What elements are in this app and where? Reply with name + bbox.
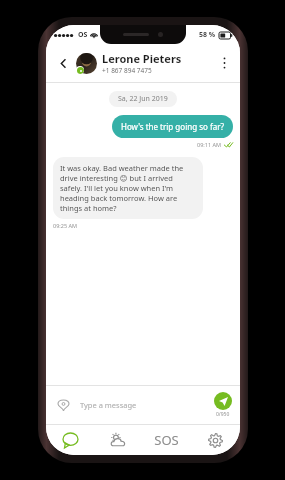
button[interactable]: Send: [214, 392, 232, 410]
staticText: 58 %: [199, 30, 216, 40]
button[interactable]: Settings: [191, 425, 240, 455]
staticText: 09:25 AM: [53, 222, 77, 229]
staticText: 0/950: [216, 411, 230, 418]
staticText: OS: [78, 30, 88, 40]
button[interactable]: More options: [214, 53, 234, 73]
button[interactable]: SOS: [142, 425, 191, 455]
staticText: +1 867 894 7475: [102, 66, 152, 75]
button[interactable]: Weather: [94, 425, 142, 455]
staticText: SOS: [154, 431, 179, 449]
staticText: It was okay. Bad weather made the drive …: [60, 163, 196, 213]
staticText: 09:11 AM: [197, 141, 221, 148]
staticText: Type a message: [80, 400, 137, 410]
button[interactable]: Share location: [54, 396, 72, 414]
staticText: Sa, 22 Jun 2019: [118, 94, 168, 104]
staticText: Lerone Pieters: [102, 51, 182, 66]
staticText: How's the trip going so far?: [121, 121, 224, 132]
button[interactable]: Type a message: [80, 400, 214, 410]
button[interactable]: Back: [52, 52, 74, 74]
button[interactable]: Chat: [46, 425, 94, 455]
